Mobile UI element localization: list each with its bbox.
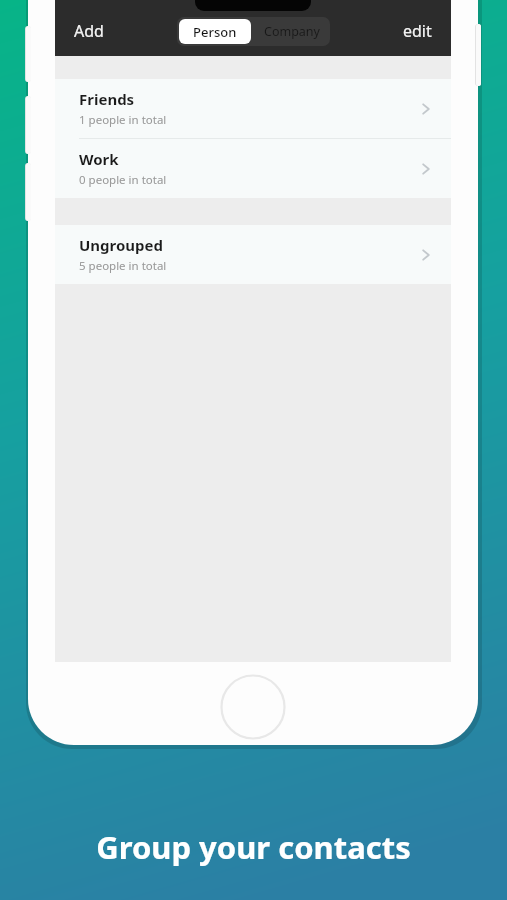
staticText: 1 people in total <box>79 112 167 128</box>
staticText: Add <box>74 20 104 42</box>
staticText: Group your contacts <box>96 826 411 868</box>
button[interactable]: Work <box>55 139 451 198</box>
staticText: edit <box>403 20 432 42</box>
button[interactable]: Friends <box>55 79 451 138</box>
staticText: Company <box>264 23 320 40</box>
staticText: 0 people in total <box>79 172 167 188</box>
staticText: Work <box>79 149 119 169</box>
staticText: 5 people in total <box>79 258 167 274</box>
staticText: Person <box>193 23 237 41</box>
button[interactable]: Ungrouped <box>55 225 451 284</box>
button[interactable]: Person <box>179 19 251 44</box>
button[interactable]: edit <box>384 13 451 49</box>
button[interactable]: Add <box>55 13 123 49</box>
button[interactable]: Company <box>253 17 330 46</box>
staticText: Friends <box>79 89 135 109</box>
staticText: Ungrouped <box>79 235 164 255</box>
